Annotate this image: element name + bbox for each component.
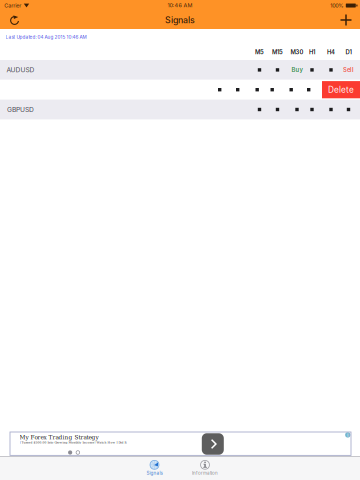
button[interactable]: My Forex Trading Strategy — [10, 432, 351, 455]
button[interactable]: GBPUSD — [0, 100, 360, 119]
staticText: Carrier — [4, 2, 21, 9]
staticText: 10:46 AM — [167, 2, 192, 9]
button[interactable]: Add signal — [333, 11, 359, 29]
staticText: Sell — [343, 66, 354, 73]
staticText: Buy — [291, 66, 302, 73]
staticText: GBPUSD — [7, 105, 34, 114]
staticText: M5 — [255, 48, 264, 56]
staticText: i — [347, 432, 348, 438]
button[interactable]: Delete — [322, 81, 360, 98]
staticText: H1 — [309, 48, 315, 56]
staticText: Last Updated: 04 Aug 2015 10:46 AM — [5, 34, 86, 40]
staticText: Delete — [328, 85, 354, 95]
staticText: Information — [192, 470, 218, 476]
staticText: My Forex Trading Strategy — [19, 434, 98, 441]
staticText: H4 — [327, 48, 335, 56]
button[interactable]: Information — [179, 457, 231, 478]
staticText: D1 — [345, 48, 351, 56]
button[interactable]: Refresh — [1, 11, 29, 29]
button[interactable]: AUDUSD — [0, 60, 360, 80]
staticText: Signals — [165, 15, 195, 25]
button[interactable]: Open ad — [202, 433, 224, 455]
button[interactable]: Signals — [128, 457, 180, 478]
staticText: I Turned $500.00 Into Growing Monthly In… — [19, 441, 126, 444]
staticText: 100% — [330, 2, 343, 9]
button[interactable] — [0, 80, 360, 100]
staticText: Signals — [146, 470, 162, 476]
staticText: M30 — [290, 48, 303, 56]
staticText: M15 — [272, 48, 283, 56]
staticText: AUDUSD — [6, 66, 34, 74]
